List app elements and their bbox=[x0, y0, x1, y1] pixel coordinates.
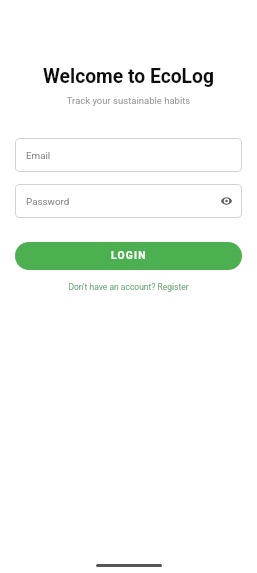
staticText: Password bbox=[26, 196, 70, 207]
button[interactable]: Password bbox=[15, 184, 242, 218]
button[interactable]: LOGIN bbox=[15, 242, 242, 270]
staticText: Don't have an account? Register bbox=[68, 282, 189, 292]
staticText: Welcome to EcoLog bbox=[0, 65, 257, 88]
button[interactable]: Email bbox=[15, 138, 242, 172]
button[interactable]: Don't have an account? Register bbox=[0, 282, 257, 292]
button[interactable]: Show password bbox=[216, 191, 236, 211]
staticText: Track your sustainable habits bbox=[0, 95, 257, 106]
staticText: Email bbox=[26, 150, 51, 161]
staticText: LOGIN bbox=[111, 249, 147, 261]
